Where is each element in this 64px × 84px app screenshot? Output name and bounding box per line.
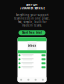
staticText: team needs in one place. [14, 17, 50, 20]
staticText: Everything your support [15, 13, 48, 17]
button[interactable]: Tab [32, 77, 39, 82]
staticText: Fast, simple, built for [17, 20, 46, 24]
button[interactable]: Tab [17, 77, 25, 82]
button[interactable]: Tab [39, 77, 46, 82]
staticText: SIMPLIFY [26, 3, 38, 6]
button[interactable]: Start free trial [18, 30, 45, 35]
staticText: modern teams. [22, 24, 42, 27]
staticText: Start free trial [22, 31, 42, 34]
staticText: Inbox [27, 44, 36, 47]
staticText: CUSTOMER SERVICE [19, 6, 44, 10]
button[interactable]: Tab [25, 77, 32, 82]
